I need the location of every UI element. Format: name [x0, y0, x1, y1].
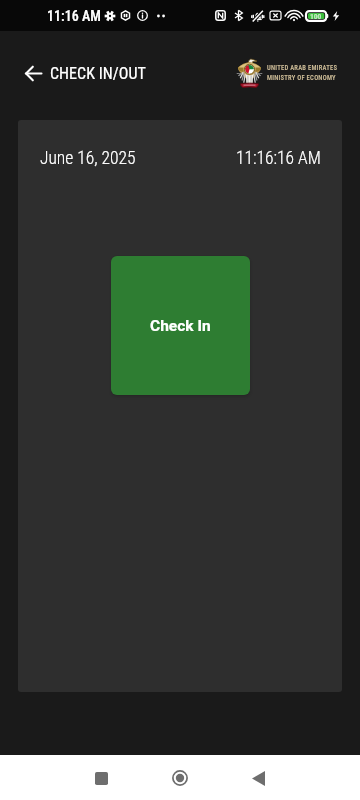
- button[interactable]: Back: [16, 56, 50, 90]
- button[interactable]: Recent apps: [81, 758, 121, 798]
- staticText: UNITED ARAB EMIRATES: [267, 64, 338, 72]
- staticText: 100: [310, 12, 322, 21]
- button[interactable]: Back: [238, 758, 278, 798]
- staticText: Check In: [150, 317, 211, 335]
- staticText: June 16, 2025: [40, 148, 136, 169]
- staticText: MINISTRY OF ECONOMY: [267, 74, 336, 82]
- staticText: 11:16:16 AM: [236, 148, 321, 169]
- staticText: CHECK IN/OUT: [50, 64, 146, 83]
- button[interactable]: Check In: [111, 256, 250, 395]
- staticText: 11:16 AM: [47, 8, 101, 24]
- button[interactable]: Home: [160, 758, 200, 798]
